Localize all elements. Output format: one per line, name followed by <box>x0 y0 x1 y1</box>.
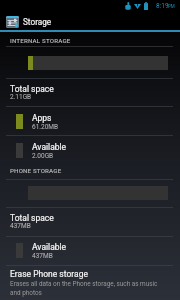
staticText: 437MB <box>32 252 53 260</box>
staticText: Available <box>32 142 67 152</box>
staticText: Total space <box>10 213 54 223</box>
button[interactable]: Available <box>0 142 180 160</box>
staticText: PM <box>168 4 175 9</box>
staticText: Apps <box>32 113 52 123</box>
staticText: 2.00GB <box>32 152 54 160</box>
button[interactable]: Apps <box>0 113 180 131</box>
button[interactable]: Total space <box>0 213 180 231</box>
staticText: 437MB <box>10 222 31 230</box>
staticText: Erase Phone storage <box>10 269 88 279</box>
button[interactable]: Available <box>0 242 180 260</box>
button[interactable]: Total space <box>0 84 180 102</box>
staticText: 2.11GB <box>10 93 32 101</box>
other: Settings <box>6 16 19 28</box>
button[interactable]: Erase Phone storage <box>0 269 180 297</box>
staticText: 8:19 <box>156 2 169 10</box>
button[interactable]: Settings <box>0 14 180 30</box>
staticText: 61.20MB <box>32 123 59 131</box>
staticText: PHONE STORAGE <box>10 167 62 174</box>
staticText: Erases all data on the Phone storage, su… <box>10 280 162 297</box>
staticText: INTERNAL STORAGE <box>10 37 71 44</box>
staticText: Available <box>32 242 67 252</box>
staticText: Storage <box>23 17 52 27</box>
staticText: Total space <box>10 84 54 94</box>
